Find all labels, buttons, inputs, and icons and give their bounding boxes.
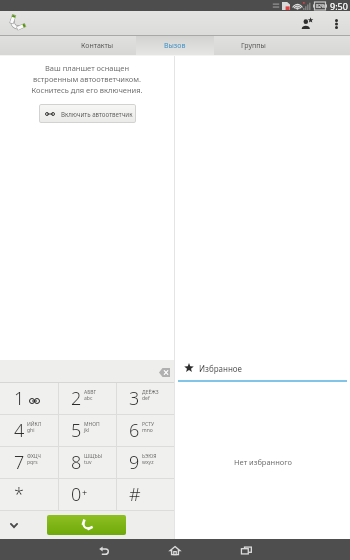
staticText: ДЕЁЖЗ def [142, 389, 159, 402]
button[interactable]: Вызов [136, 36, 214, 56]
staticText: 3 [129, 386, 140, 411]
button[interactable]: 6 [117, 415, 174, 446]
staticText: Группы [241, 41, 266, 51]
button[interactable]: 8 [59, 447, 116, 478]
button[interactable]: Phone [0, 11, 32, 36]
button[interactable]: 9 [117, 447, 174, 478]
button[interactable]: Home [157, 539, 193, 560]
button[interactable]: # [117, 479, 174, 510]
staticText: ШЩЪЫ tuv [84, 453, 102, 466]
button[interactable]: 7 [2, 447, 58, 478]
staticText: АБВГ abc [84, 389, 97, 402]
staticText: 9 [129, 450, 140, 475]
button[interactable]: 4 [2, 415, 58, 446]
staticText: 6 [129, 418, 140, 443]
staticText: 0 [71, 482, 82, 507]
staticText: 4 [14, 418, 25, 443]
staticText: ФХЦЧ pqrs [27, 453, 41, 466]
staticText: Ваш планшет оснащен встроенным автоответ… [31, 63, 143, 95]
staticText: МНОП jkl [84, 421, 100, 434]
button[interactable]: 3 [117, 383, 174, 414]
button[interactable]: Контакты [58, 36, 136, 56]
staticText: 1 [14, 386, 25, 411]
staticText: 7 [14, 450, 25, 475]
button[interactable]: Call [47, 515, 126, 535]
staticText: Избранное [199, 363, 243, 374]
staticText: 5 [71, 418, 82, 443]
button[interactable]: More options [325, 12, 348, 35]
staticText: + [82, 486, 88, 498]
staticText: * [14, 482, 24, 507]
button[interactable]: Backspace [155, 363, 173, 381]
staticText: 2 [71, 386, 82, 411]
staticText: Контакты [81, 41, 114, 51]
staticText: 8 [71, 450, 82, 475]
button[interactable]: * [2, 479, 58, 510]
staticText: Вызов [164, 41, 186, 51]
button[interactable]: 5 [59, 415, 116, 446]
button[interactable]: Add contact [294, 11, 319, 36]
staticText: Нет избранного [234, 457, 292, 467]
button[interactable]: 1 [2, 383, 58, 414]
staticText: РСТУ mno [142, 421, 155, 434]
button[interactable]: 2 [59, 383, 116, 414]
button[interactable]: Collapse keypad [4, 515, 24, 535]
staticText: # [129, 482, 141, 507]
button[interactable]: 0 [59, 479, 116, 510]
button[interactable]: Включить автоответчик [39, 104, 136, 123]
button[interactable]: Back [86, 539, 122, 560]
button[interactable]: Recent apps [228, 539, 264, 560]
staticText: ЬЭЮЯ wxyz [142, 453, 157, 466]
staticText: 9:50 [330, 0, 348, 11]
staticText: Включить автоответчик [61, 110, 133, 118]
staticText: ИЙКЛ ghi [27, 421, 42, 434]
button[interactable]: Группы [214, 36, 292, 56]
staticText: 82% [316, 3, 325, 9]
